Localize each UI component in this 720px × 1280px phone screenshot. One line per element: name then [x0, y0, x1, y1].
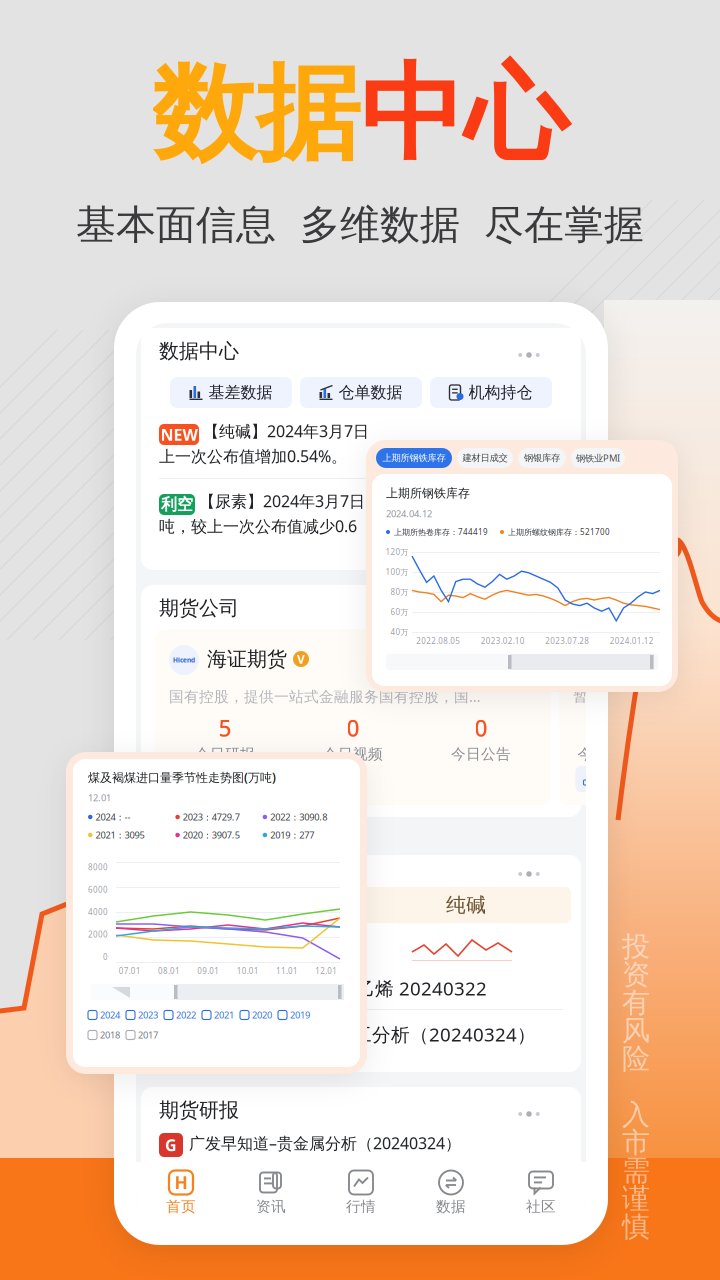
button[interactable]: H — [136, 1170, 226, 1215]
staticText: 投 — [622, 929, 650, 964]
staticText: 广发早知道–贵金属分析（20240324） — [189, 1132, 461, 1154]
staticText: 今日研报 — [195, 745, 255, 763]
staticText: 暂无简 — [573, 687, 618, 705]
staticText: 持仓 — [600, 769, 632, 789]
staticText: 2022 — [176, 1009, 196, 1021]
button[interactable]: 数据 — [406, 1170, 496, 1215]
staticText: 2020 — [252, 1009, 272, 1021]
staticText: 2022.08.05 — [416, 636, 460, 646]
staticText: 钢铁业PMI — [576, 452, 620, 464]
staticText: G — [165, 1134, 177, 1156]
staticText: 60万 — [390, 607, 408, 617]
staticText: 2024.01.12 — [610, 636, 654, 646]
staticText: 0 — [474, 713, 487, 743]
staticText: 仓单数据 — [338, 383, 402, 402]
staticText: 2017 — [138, 1029, 158, 1041]
staticText: 险 — [622, 1041, 650, 1076]
staticText: 2023.02.10 — [481, 636, 525, 646]
staticText: 钢银库存 — [524, 452, 560, 464]
staticText: Hicend — [173, 656, 195, 664]
button[interactable]: 基差数据 — [170, 377, 292, 408]
staticText: H — [174, 1171, 187, 1194]
staticText: 海证期货 — [207, 647, 287, 671]
staticText: 2023.07.28 — [545, 636, 589, 646]
staticText: 入 — [622, 1097, 650, 1132]
staticText: 建仓过程 — [194, 769, 258, 789]
staticText: 数据 — [436, 1197, 466, 1215]
staticText: 需 — [622, 1153, 650, 1188]
staticText: V — [297, 651, 305, 667]
staticText: 80万 — [390, 587, 408, 597]
staticText: 期货公司 — [159, 596, 239, 620]
button[interactable]: 资讯 — [226, 1170, 316, 1215]
staticText: 数据 — [152, 50, 360, 178]
staticText: 07.01 — [119, 966, 141, 976]
staticText: 【纯碱】2024年3月7日 — [203, 420, 369, 442]
staticText: 0 — [103, 951, 108, 962]
staticText: 2024.04.12 — [386, 507, 432, 520]
button[interactable]: 持仓 — [575, 766, 640, 792]
staticText: 2024：-- — [95, 811, 130, 823]
staticText: 煤及褐煤进口量季节性走势图(万吨) — [88, 769, 276, 785]
staticText: 今日公告 — [451, 745, 511, 763]
staticText: 国有控股，提供一站式金融服务国有控股，国… — [169, 686, 481, 706]
staticText: 上一次公布值增加0.54%。 — [159, 445, 347, 467]
staticText: 吨，较上一次公布值减少0.6 — [159, 515, 357, 537]
staticText: 数据中心 — [159, 339, 239, 363]
staticText: 0 — [346, 713, 359, 743]
button[interactable]: 仓单数据 — [300, 377, 422, 408]
staticText: 2021：3095 — [95, 829, 144, 841]
staticText: 40万 — [390, 627, 408, 637]
staticText: 4000 — [88, 907, 108, 917]
staticText: 8000 — [88, 862, 108, 872]
staticText: 首页 — [166, 1197, 196, 1215]
staticText: 09.01 — [197, 966, 219, 976]
staticText: 上期所钢铁库存 — [382, 452, 445, 464]
staticText: 120万 — [385, 547, 408, 557]
staticText: 2024 — [100, 1009, 120, 1021]
staticText: 黄金 — [236, 893, 276, 917]
staticText: 2018 — [100, 1029, 120, 1041]
staticText: 机构持仓 — [468, 383, 532, 402]
staticText: 2022：3090.8 — [270, 811, 327, 823]
button[interactable]: 社区 — [496, 1170, 586, 1215]
staticText: 100万 — [385, 567, 408, 577]
button[interactable]: 行情 — [316, 1170, 406, 1215]
staticText: 资讯 — [256, 1197, 286, 1215]
staticText: 2023 — [138, 1009, 158, 1021]
staticText: 【尿素】2024年3月7日 — [199, 490, 365, 512]
staticText: 基本面信息 多维数据 尽在掌握 — [76, 200, 644, 249]
staticText: 有 — [622, 985, 650, 1020]
staticText: 苯乙烯 20240322 — [337, 976, 487, 1001]
staticText: 上期所热卷库存：744419 — [394, 527, 488, 537]
button[interactable]: 机构持仓 — [430, 377, 552, 408]
staticText: 建材日成交 — [462, 452, 507, 464]
staticText: 6000 — [88, 884, 108, 895]
staticText: 谨 — [622, 1181, 650, 1216]
staticText: –化工分析（20240324） — [325, 1022, 536, 1047]
staticText: 期货研报 — [159, 1098, 239, 1122]
staticText: 08.01 — [158, 966, 180, 976]
staticText: 社区 — [526, 1197, 556, 1215]
staticText: 风 — [622, 1013, 650, 1048]
staticText: 中心 — [360, 50, 568, 178]
staticText: 2023：4729.7 — [183, 811, 240, 823]
staticText: 10.01 — [237, 966, 259, 976]
staticText: 5 — [218, 713, 231, 743]
staticText: 2021 — [214, 1009, 234, 1021]
button[interactable]: 建仓过程 — [169, 766, 266, 792]
staticText: 上期所钢铁库存 — [386, 486, 470, 500]
staticText: 11.01 — [276, 966, 298, 976]
staticText: 上期所螺纹钢库存：521700 — [508, 527, 610, 537]
staticText: 慎 — [622, 1209, 650, 1244]
staticText: 行情 — [346, 1197, 376, 1215]
staticText: 2000 — [88, 929, 108, 940]
staticText — [632, 1068, 639, 1105]
staticText: 今日视频 — [323, 745, 383, 763]
staticText: NEW — [160, 424, 197, 445]
staticText: 资 — [622, 957, 650, 992]
staticText: 市 — [622, 1125, 650, 1160]
staticText: 12.01 — [88, 791, 111, 804]
